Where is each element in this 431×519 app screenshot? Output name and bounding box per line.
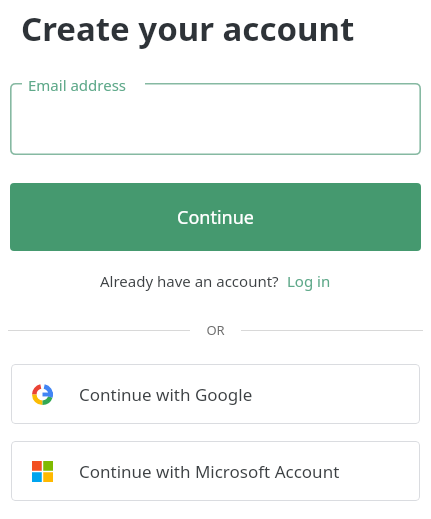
button[interactable]: Email address [10,83,421,155]
staticText: Continue with Microsoft Account [79,460,340,483]
other: Google logo [32,384,53,405]
button[interactable]: Microsoft logo [11,441,420,501]
button[interactable]: Continue [10,183,421,251]
staticText: Log in [287,271,331,291]
staticText: Continue [177,205,254,230]
staticText: Email address [28,75,127,95]
staticText: Already have an account? [100,271,279,291]
other: Microsoft logo [32,461,53,482]
staticText: OR [206,321,225,339]
staticText: Continue with Google [79,383,253,406]
button[interactable]: Google logo [11,364,420,424]
staticText: Create your account [21,6,355,51]
button[interactable]: Log in [287,271,331,291]
